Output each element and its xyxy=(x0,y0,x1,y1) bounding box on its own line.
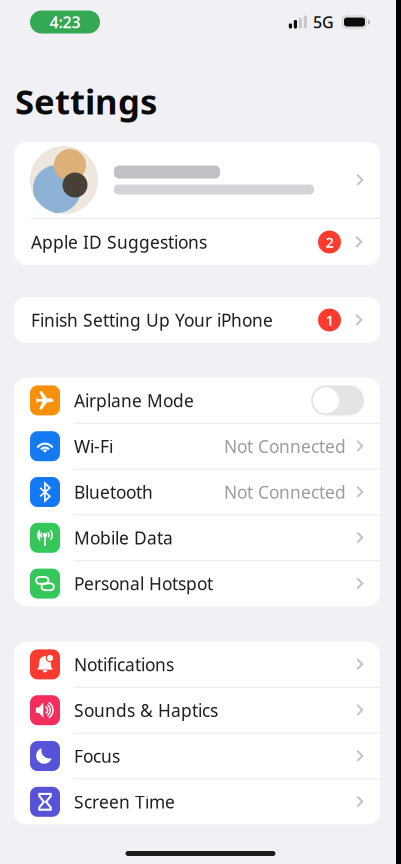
staticText: Bluetooth xyxy=(74,480,153,503)
button[interactable]: Personal Hotspot xyxy=(14,561,380,606)
staticText: Not Connected xyxy=(224,480,346,503)
staticText: Sounds & Haptics xyxy=(74,699,218,722)
staticText: 1 xyxy=(325,310,333,330)
staticText: 5G xyxy=(313,11,334,33)
button[interactable]: Sounds & Haptics xyxy=(14,688,380,733)
button[interactable]: Wi-Fi xyxy=(14,424,380,469)
staticText: Airplane Mode xyxy=(74,389,194,412)
button[interactable]: Notifications xyxy=(14,642,380,687)
staticText: Notifications xyxy=(74,653,174,676)
staticText: Settings xyxy=(15,78,157,124)
staticText: Apple ID Suggestions xyxy=(31,230,207,253)
staticText: Focus xyxy=(74,744,120,767)
button[interactable]: Mobile Data xyxy=(14,515,380,560)
staticText: Not Connected xyxy=(224,435,346,458)
button[interactable]: Finish Setting Up Your iPhone xyxy=(14,297,380,343)
staticText: 2 xyxy=(325,232,333,252)
staticText: Finish Setting Up Your iPhone xyxy=(31,308,273,331)
button[interactable]: Focus xyxy=(14,734,380,778)
staticText: 4:23 xyxy=(49,11,80,33)
staticText: Personal Hotspot xyxy=(74,572,213,595)
button[interactable]: Screen Time xyxy=(14,779,380,824)
button[interactable] xyxy=(14,142,380,218)
button[interactable]: Apple ID Suggestions xyxy=(14,219,380,265)
staticText: Screen Time xyxy=(74,790,175,813)
staticText: Wi-Fi xyxy=(74,435,113,458)
button[interactable]: Airplane Mode xyxy=(14,378,380,423)
button[interactable]: Bluetooth xyxy=(14,470,380,514)
staticText: Mobile Data xyxy=(74,526,173,549)
